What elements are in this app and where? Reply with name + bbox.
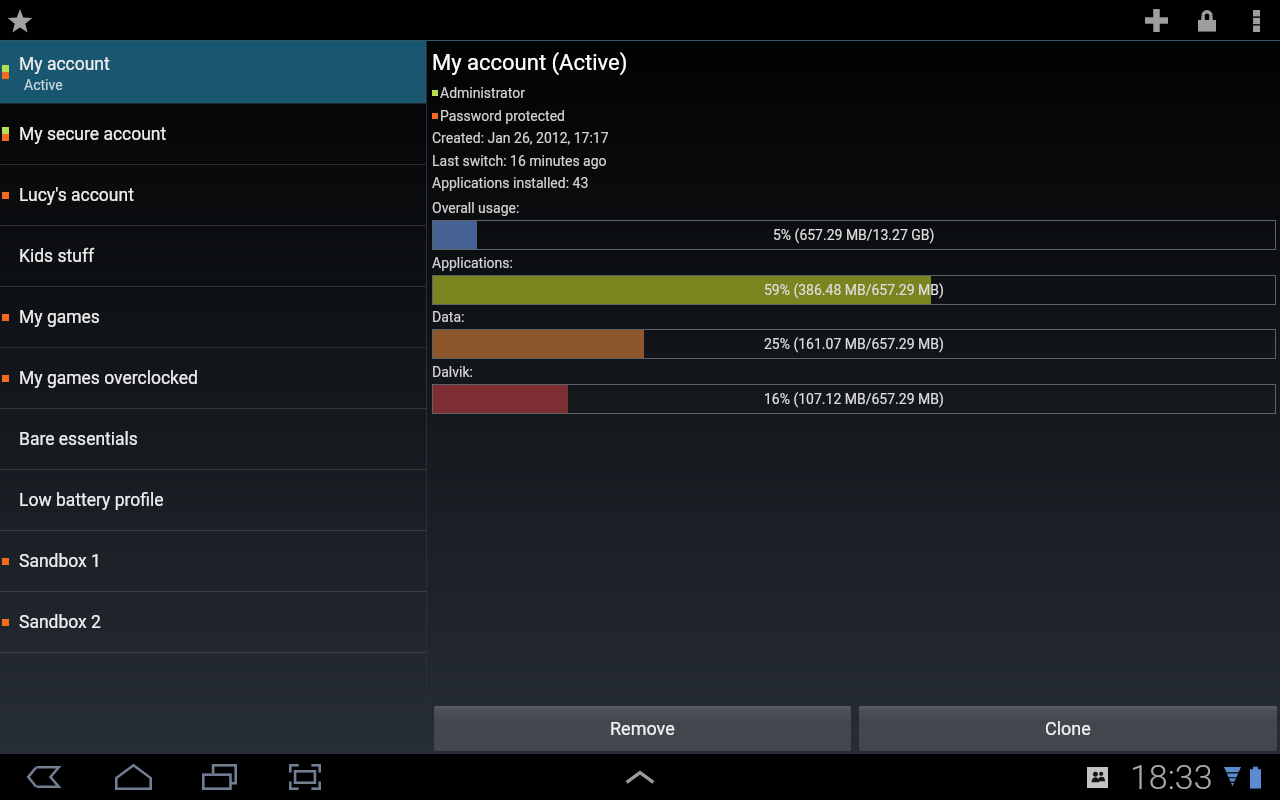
staticText: Bare essentials [19,429,138,450]
button[interactable]: My games [0,287,426,347]
staticText: 25% (161.07 MB/657.29 MB) [764,336,944,352]
staticText: My games [19,307,100,328]
staticText: Password protected [440,108,565,124]
button[interactable]: Low battery profile [0,470,426,530]
staticText: Administrator [440,85,525,101]
staticText: Overall usage: [432,200,520,216]
button[interactable]: More options [1232,0,1280,41]
staticText: Lucy's account [19,185,134,206]
button[interactable]: Kids stuff [0,226,426,286]
button[interactable]: App icon [0,0,40,41]
button[interactable]: Lock [1182,0,1232,41]
staticText: Applications: [432,255,513,271]
button[interactable]: Recent apps [194,754,244,800]
button[interactable]: My games overclocked [0,348,426,408]
button[interactable]: Back [18,754,68,800]
staticText: Dalvik: [432,364,473,380]
staticText: 59% (386.48 MB/657.29 MB) [764,282,944,298]
staticText: Last switch: 16 minutes ago [432,153,607,169]
staticText: Applications installed: 43 [432,175,589,191]
staticText: Low battery profile [19,490,164,511]
staticText: Active [24,77,63,93]
button[interactable]: Sandbox 2 [0,592,426,652]
button[interactable]: Screenshot [280,754,330,800]
button[interactable]: My account [0,41,426,103]
staticText: Sandbox 1 [19,551,101,572]
staticText: Sandbox 2 [19,612,101,633]
button[interactable]: Remove [434,706,851,751]
button[interactable]: Bare essentials [0,409,426,469]
button[interactable]: Lucy's account [0,165,426,225]
staticText: Created: Jan 26, 2012, 17:17 [432,130,609,146]
staticText: 5% (657.29 MB/13.27 GB) [773,227,935,243]
staticText: Clone [1045,718,1091,739]
staticText: My account (Active) [432,50,628,76]
staticText: Data: [432,309,465,325]
button[interactable]: Expand notifications [615,754,665,800]
button[interactable]: Clone [859,706,1277,751]
staticText: My account [19,54,110,75]
staticText: Kids stuff [19,246,95,267]
button[interactable]: Home [108,754,158,800]
staticText: 16% (107.12 MB/657.29 MB) [764,391,944,407]
staticText: 18:33 [1130,757,1213,797]
staticText: My games overclocked [19,368,198,389]
staticText: Remove [610,718,675,739]
button[interactable]: My secure account [0,104,426,164]
button[interactable]: Sandbox 1 [0,531,426,591]
staticText: My secure account [19,124,167,145]
button[interactable]: Add account [1130,0,1182,41]
